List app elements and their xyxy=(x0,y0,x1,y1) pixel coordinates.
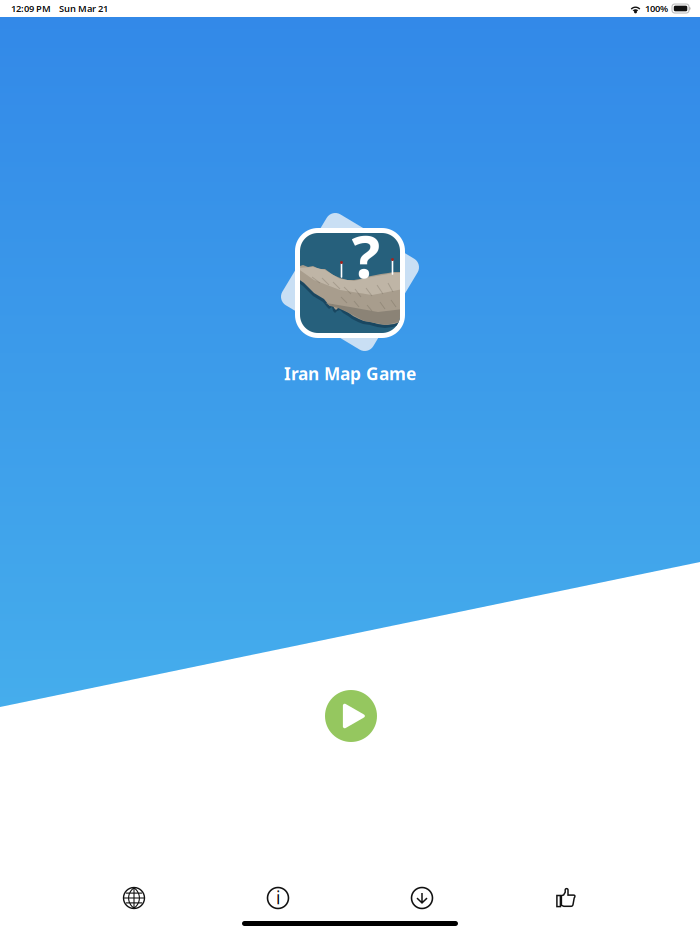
button[interactable]: Play xyxy=(321,686,381,746)
staticText: Iran Map Game xyxy=(284,362,416,385)
staticText: Sun Mar 21 xyxy=(59,2,108,15)
staticText: ? xyxy=(351,215,380,295)
button[interactable]: Rate xyxy=(494,876,638,920)
button[interactable]: Download xyxy=(350,876,494,920)
button[interactable]: Language xyxy=(62,876,206,920)
staticText: i xyxy=(276,886,280,909)
staticText: 12:09 PM xyxy=(11,2,51,15)
staticText: 100% xyxy=(645,2,668,15)
button[interactable]: About xyxy=(206,876,350,920)
